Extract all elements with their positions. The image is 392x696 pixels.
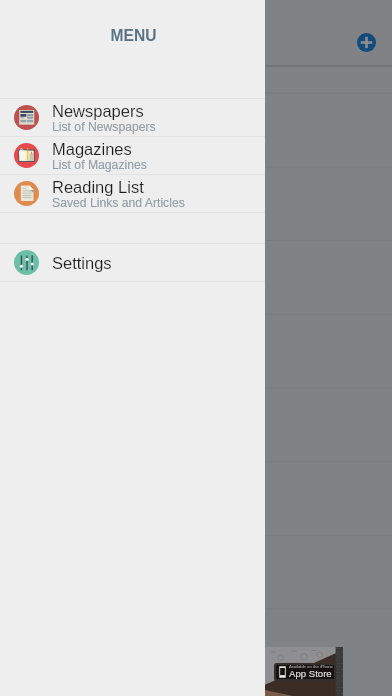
button[interactable]: Reading List: [0, 175, 265, 212]
staticText: Magazines: [52, 140, 132, 158]
staticText: App Store: [289, 668, 332, 679]
staticText: Reading List: [52, 178, 144, 196]
staticText: Settings: [52, 254, 112, 272]
button[interactable]: Available on the App Store: [265, 647, 343, 696]
button[interactable]: Settings: [0, 244, 265, 281]
staticText: Available on the iPhone: [289, 664, 333, 669]
button[interactable]: Newspapers: [0, 99, 265, 136]
staticText: Saved Links and Articles: [52, 196, 185, 210]
button[interactable]: Magazines: [0, 137, 265, 174]
staticText: MENU: [1, 27, 266, 44]
staticText: Newspapers: [52, 102, 144, 120]
button[interactable]: Add: [357, 33, 376, 52]
staticText: List of Newspapers: [52, 120, 156, 134]
staticText: List of Magazines: [52, 158, 147, 172]
